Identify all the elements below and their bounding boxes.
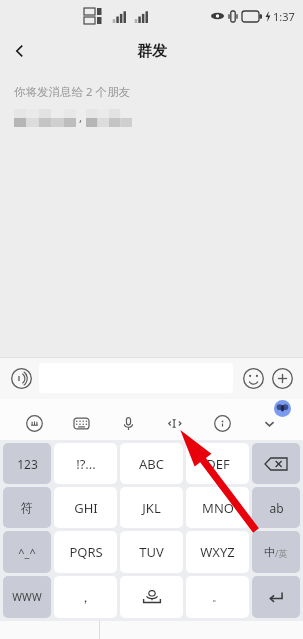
staticText: 1:37	[273, 9, 295, 24]
button[interactable]: Voice input	[8, 365, 34, 391]
button[interactable]: MNO	[186, 487, 249, 528]
button[interactable]: ^_^	[3, 531, 51, 573]
button[interactable]: ab	[252, 487, 300, 528]
button[interactable]: ，	[54, 576, 117, 618]
button[interactable]: Settings	[209, 410, 235, 436]
button[interactable]: Emoji	[240, 365, 266, 391]
button[interactable]: DEF	[186, 443, 249, 484]
staticText: WXYZ	[200, 543, 235, 561]
staticText: PQRS	[69, 543, 103, 561]
staticText: 你将发消息给 2 个朋友	[14, 84, 131, 100]
button[interactable]: 符	[3, 487, 51, 528]
button[interactable]: Delete	[252, 443, 300, 484]
staticText: ,	[76, 110, 86, 126]
staticText: 群发	[137, 42, 167, 61]
staticText: TUV	[139, 543, 164, 561]
button[interactable]: GHI	[54, 487, 117, 528]
button[interactable]: Enter	[252, 576, 300, 618]
button[interactable]: 中	[252, 531, 300, 573]
staticText: GHI	[74, 499, 98, 517]
staticText: JKL	[142, 499, 161, 517]
button[interactable]: WWW	[3, 576, 51, 618]
button[interactable]: !?...	[54, 443, 117, 484]
button[interactable]: TUV	[120, 531, 183, 573]
button[interactable]: Hide keyboard	[256, 410, 282, 436]
button[interactable]: Handwriting	[21, 410, 47, 436]
staticText: ab	[269, 500, 284, 516]
button[interactable]: Space	[120, 576, 183, 618]
button[interactable]: PQRS	[54, 531, 117, 573]
staticText: ^_^	[18, 545, 36, 560]
button[interactable]: 123	[3, 443, 51, 484]
button[interactable]: Back	[0, 32, 40, 70]
staticText: 123	[17, 456, 38, 472]
button[interactable]: Keyboard	[68, 410, 94, 436]
staticText: 中	[264, 545, 275, 559]
staticText: /英	[275, 547, 288, 559]
button[interactable]: 。	[186, 576, 249, 618]
staticText: 。	[212, 590, 223, 604]
staticText: ，	[79, 589, 92, 605]
staticText: !?...	[76, 455, 96, 473]
button[interactable]: ABC	[120, 443, 183, 484]
staticText: DEF	[206, 455, 230, 473]
staticText: 符	[21, 500, 33, 515]
button[interactable]: Microphone	[115, 410, 141, 436]
button[interactable]: More	[269, 365, 295, 391]
button[interactable]: JKL	[120, 487, 183, 528]
staticText: ABC	[139, 455, 164, 473]
button[interactable]: Cursor	[162, 410, 188, 436]
staticText: MNO	[202, 499, 234, 517]
button[interactable]: WXYZ	[186, 531, 249, 573]
staticText: WWW	[12, 590, 42, 604]
